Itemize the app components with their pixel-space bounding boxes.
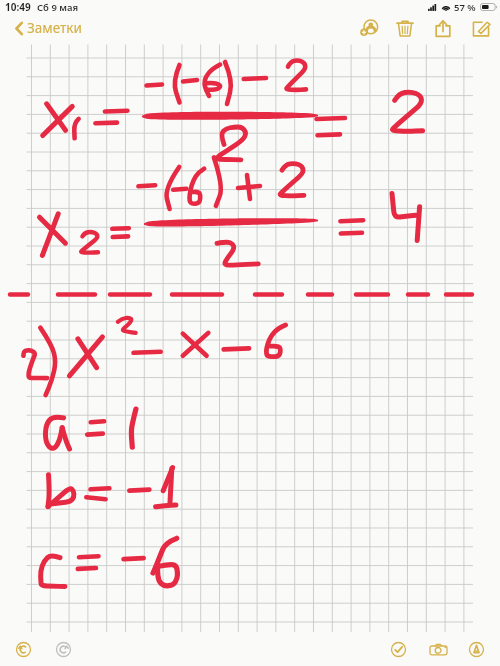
button[interactable]: Share — [432, 17, 454, 39]
staticText: 57 % — [454, 1, 476, 14]
button[interactable]: Add people — [358, 17, 380, 39]
button[interactable]: Delete — [394, 17, 416, 39]
staticText: 10:49 — [5, 0, 31, 14]
staticText: Заметки — [27, 19, 82, 37]
button[interactable]: Done — [383, 634, 413, 664]
button[interactable]: Redo — [48, 634, 78, 664]
button[interactable]: Undo — [8, 634, 38, 664]
button[interactable]: Compose — [470, 17, 492, 39]
button[interactable]: Camera — [423, 634, 453, 664]
staticText: Сб 9 мая — [37, 1, 79, 14]
button[interactable]: Markup — [461, 634, 491, 664]
button[interactable]: Заметки — [13, 16, 84, 40]
